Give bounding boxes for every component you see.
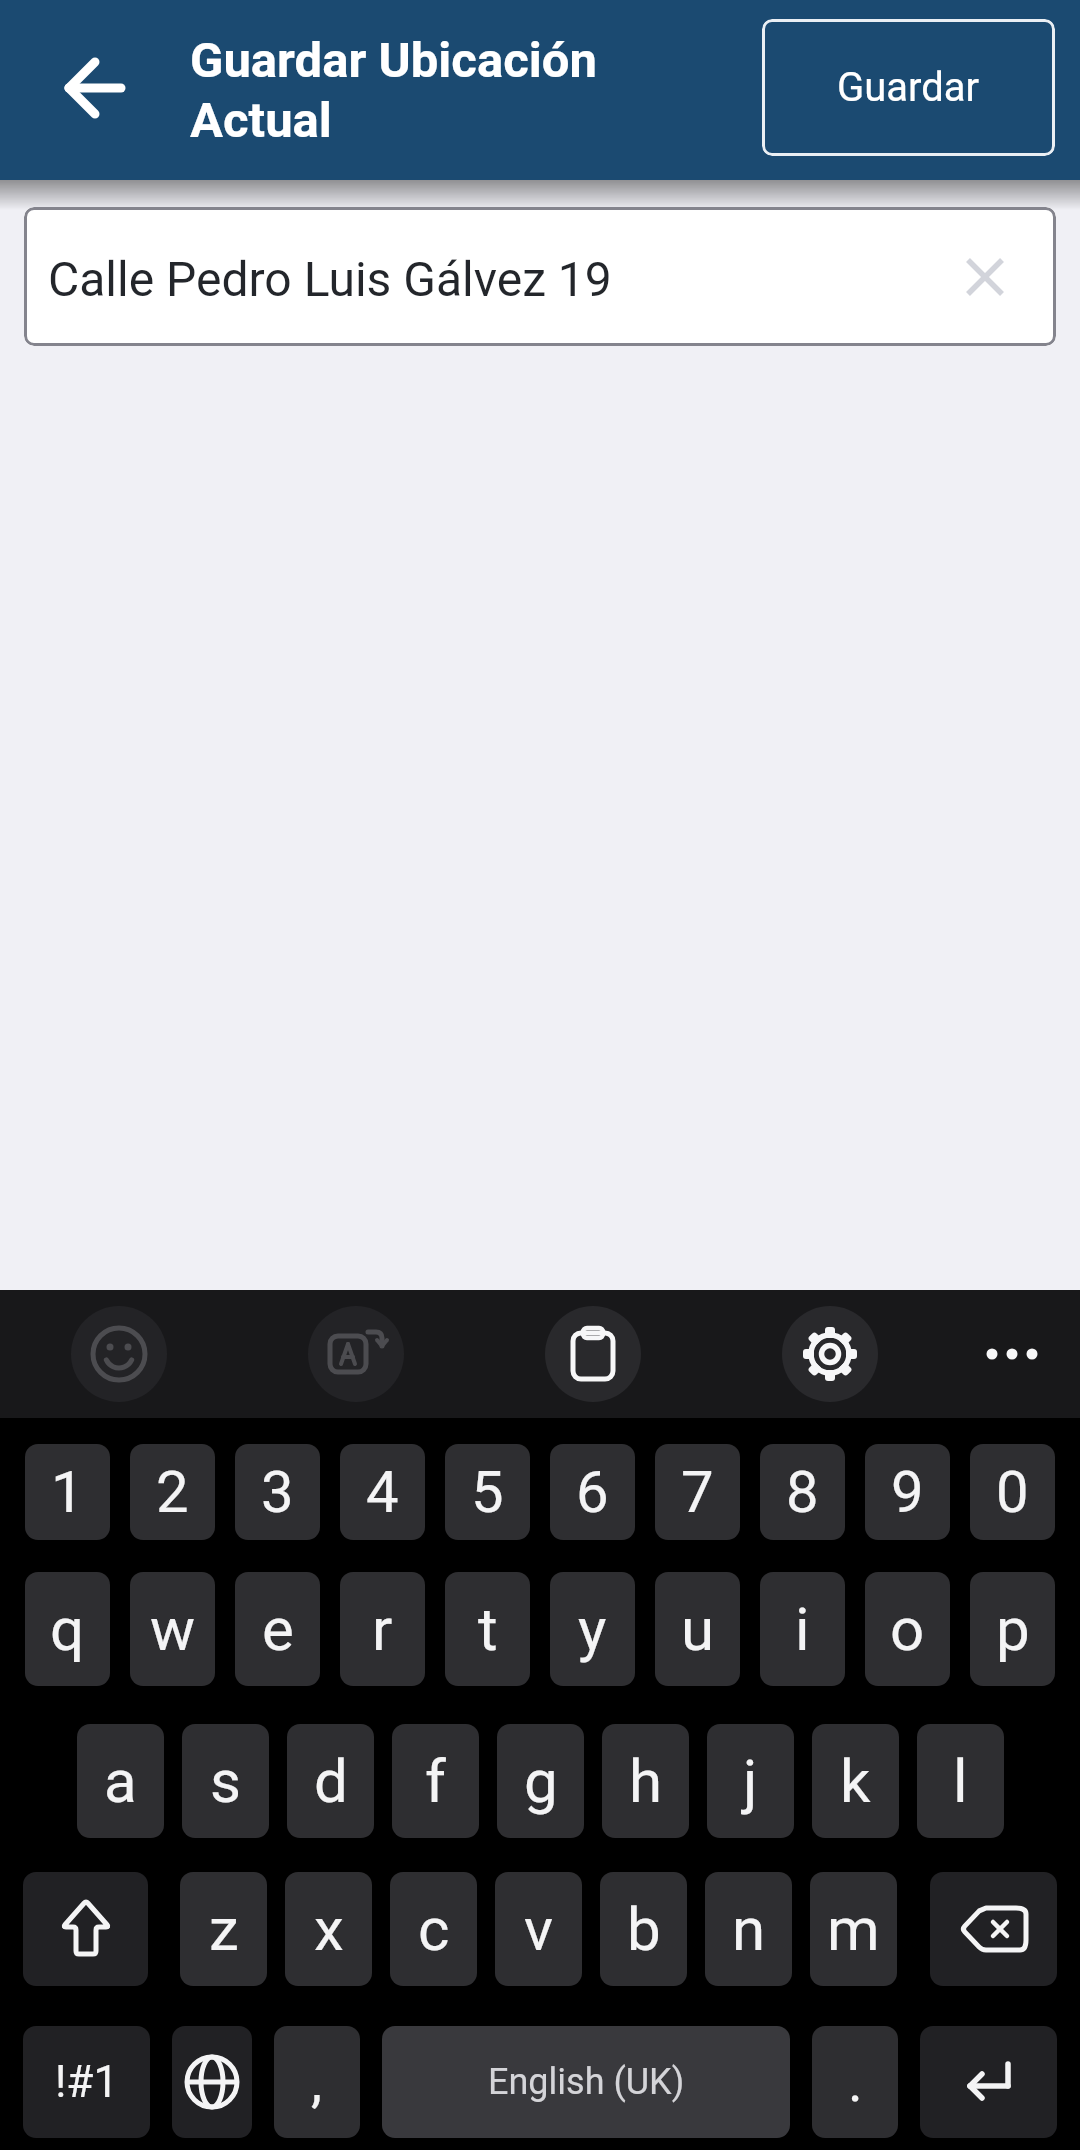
button[interactable]: q <box>25 1572 110 1686</box>
staticText: c <box>418 1894 450 1964</box>
button[interactable]: 4 <box>340 1444 425 1540</box>
staticText: k <box>840 1746 871 1816</box>
button[interactable]: x <box>285 1872 372 1986</box>
button[interactable] <box>782 1306 878 1402</box>
staticText: a <box>104 1746 137 1816</box>
button[interactable]: 6 <box>550 1444 635 1540</box>
staticText: w <box>150 1594 196 1664</box>
staticText: j <box>743 1746 758 1816</box>
button[interactable] <box>964 1306 1060 1402</box>
staticText: e <box>262 1594 294 1664</box>
staticText: Guardar Ubicación Actual <box>190 32 597 149</box>
button[interactable]: 2 <box>130 1444 215 1540</box>
button[interactable]: n <box>705 1872 792 1986</box>
staticText: g <box>524 1746 558 1816</box>
staticText: 1 <box>51 1458 84 1526</box>
button[interactable]: u <box>655 1572 740 1686</box>
button[interactable]: d <box>287 1724 374 1838</box>
staticText: l <box>953 1746 968 1816</box>
staticText: Guardar <box>837 64 980 111</box>
button[interactable]: y <box>550 1572 635 1686</box>
button[interactable]: , <box>274 2026 360 2138</box>
staticText: s <box>210 1746 241 1816</box>
button[interactable]: Calle Pedro Luis Gálvez 19 <box>24 207 1056 346</box>
button[interactable]: Guardar <box>762 19 1055 156</box>
staticText: r <box>372 1594 393 1664</box>
staticText: 7 <box>681 1458 714 1526</box>
button[interactable]: English (UK) <box>382 2026 790 2138</box>
button[interactable]: . <box>812 2026 898 2138</box>
button[interactable]: b <box>600 1872 687 1986</box>
staticText: z <box>209 1894 239 1964</box>
staticText: f <box>425 1746 446 1816</box>
button[interactable]: 5 <box>445 1444 530 1540</box>
button[interactable] <box>172 2026 252 2138</box>
button[interactable]: k <box>812 1724 899 1838</box>
button[interactable]: l <box>917 1724 1004 1838</box>
staticText: m <box>827 1894 880 1964</box>
button[interactable]: 3 <box>235 1444 320 1540</box>
button[interactable]: i <box>760 1572 845 1686</box>
button[interactable]: 8 <box>760 1444 845 1540</box>
button[interactable]: r <box>340 1572 425 1686</box>
button[interactable] <box>23 1872 148 1986</box>
button[interactable]: e <box>235 1572 320 1686</box>
staticText: i <box>795 1594 810 1664</box>
staticText: !#1 <box>55 2056 119 2108</box>
staticText: b <box>627 1894 661 1964</box>
staticText: , <box>311 2049 323 2115</box>
button[interactable] <box>71 1306 167 1402</box>
staticText: 4 <box>366 1458 399 1526</box>
staticText: English (UK) <box>488 2061 685 2103</box>
button[interactable]: w <box>130 1572 215 1686</box>
button[interactable] <box>47 40 143 136</box>
button[interactable] <box>920 2026 1057 2138</box>
staticText: 8 <box>786 1458 819 1526</box>
button[interactable]: h <box>602 1724 689 1838</box>
staticText: 2 <box>156 1458 189 1526</box>
button[interactable]: o <box>865 1572 950 1686</box>
button[interactable] <box>938 207 1032 346</box>
staticText: 0 <box>996 1458 1029 1526</box>
button[interactable]: a <box>77 1724 164 1838</box>
staticText: 5 <box>471 1458 504 1526</box>
button[interactable]: m <box>810 1872 897 1986</box>
button[interactable]: 7 <box>655 1444 740 1540</box>
staticText: . <box>848 2049 863 2115</box>
button[interactable]: j <box>707 1724 794 1838</box>
staticText: y <box>578 1594 607 1664</box>
staticText: t <box>478 1594 498 1664</box>
staticText: q <box>50 1594 85 1664</box>
button[interactable]: p <box>970 1572 1055 1686</box>
button[interactable]: v <box>495 1872 582 1986</box>
button[interactable]: 9 <box>865 1444 950 1540</box>
button[interactable]: 0 <box>970 1444 1055 1540</box>
staticText: v <box>524 1894 554 1964</box>
button[interactable]: !#1 <box>23 2026 150 2138</box>
button[interactable]: z <box>180 1872 267 1986</box>
button[interactable]: 1 <box>25 1444 110 1540</box>
button[interactable]: s <box>182 1724 269 1838</box>
staticText: h <box>629 1746 663 1816</box>
button[interactable]: g <box>497 1724 584 1838</box>
staticText: u <box>681 1594 715 1664</box>
button[interactable] <box>545 1306 641 1402</box>
button[interactable] <box>308 1306 404 1402</box>
staticText: p <box>996 1594 1030 1664</box>
staticText: n <box>732 1894 766 1964</box>
button[interactable]: t <box>445 1572 530 1686</box>
button[interactable] <box>930 1872 1057 1986</box>
button[interactable]: c <box>390 1872 477 1986</box>
staticText: d <box>314 1746 348 1816</box>
staticText: x <box>314 1894 344 1964</box>
staticText: 3 <box>261 1458 294 1526</box>
button[interactable]: f <box>392 1724 479 1838</box>
staticText: 9 <box>891 1458 924 1526</box>
staticText: Calle Pedro Luis Gálvez 19 <box>48 251 612 307</box>
staticText: 6 <box>576 1458 609 1526</box>
staticText: o <box>890 1594 925 1664</box>
